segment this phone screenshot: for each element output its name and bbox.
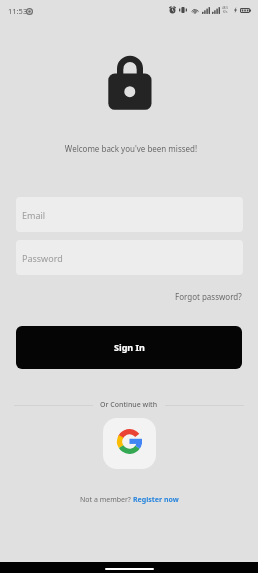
staticText: Welcome back you've been missed! [2, 143, 258, 154]
button[interactable]: Email [16, 197, 243, 232]
button[interactable]: Forgot password? [174, 289, 242, 303]
staticText: K/s [223, 10, 228, 14]
staticText: 11:53 [8, 6, 28, 16]
staticText: 48.5 [222, 6, 228, 10]
staticText: Not a member? [80, 495, 133, 505]
staticText: Email [22, 209, 46, 221]
staticText: Password [22, 252, 63, 264]
button[interactable]: Password [16, 240, 243, 275]
button[interactable]: Sign In [16, 326, 242, 369]
staticText: Sign In [114, 341, 145, 353]
staticText: Or Continue with [100, 400, 158, 410]
staticText: Forgot password? [175, 291, 242, 302]
button[interactable]: Sign in with Google [103, 418, 156, 469]
button[interactable]: Register now [133, 495, 179, 505]
